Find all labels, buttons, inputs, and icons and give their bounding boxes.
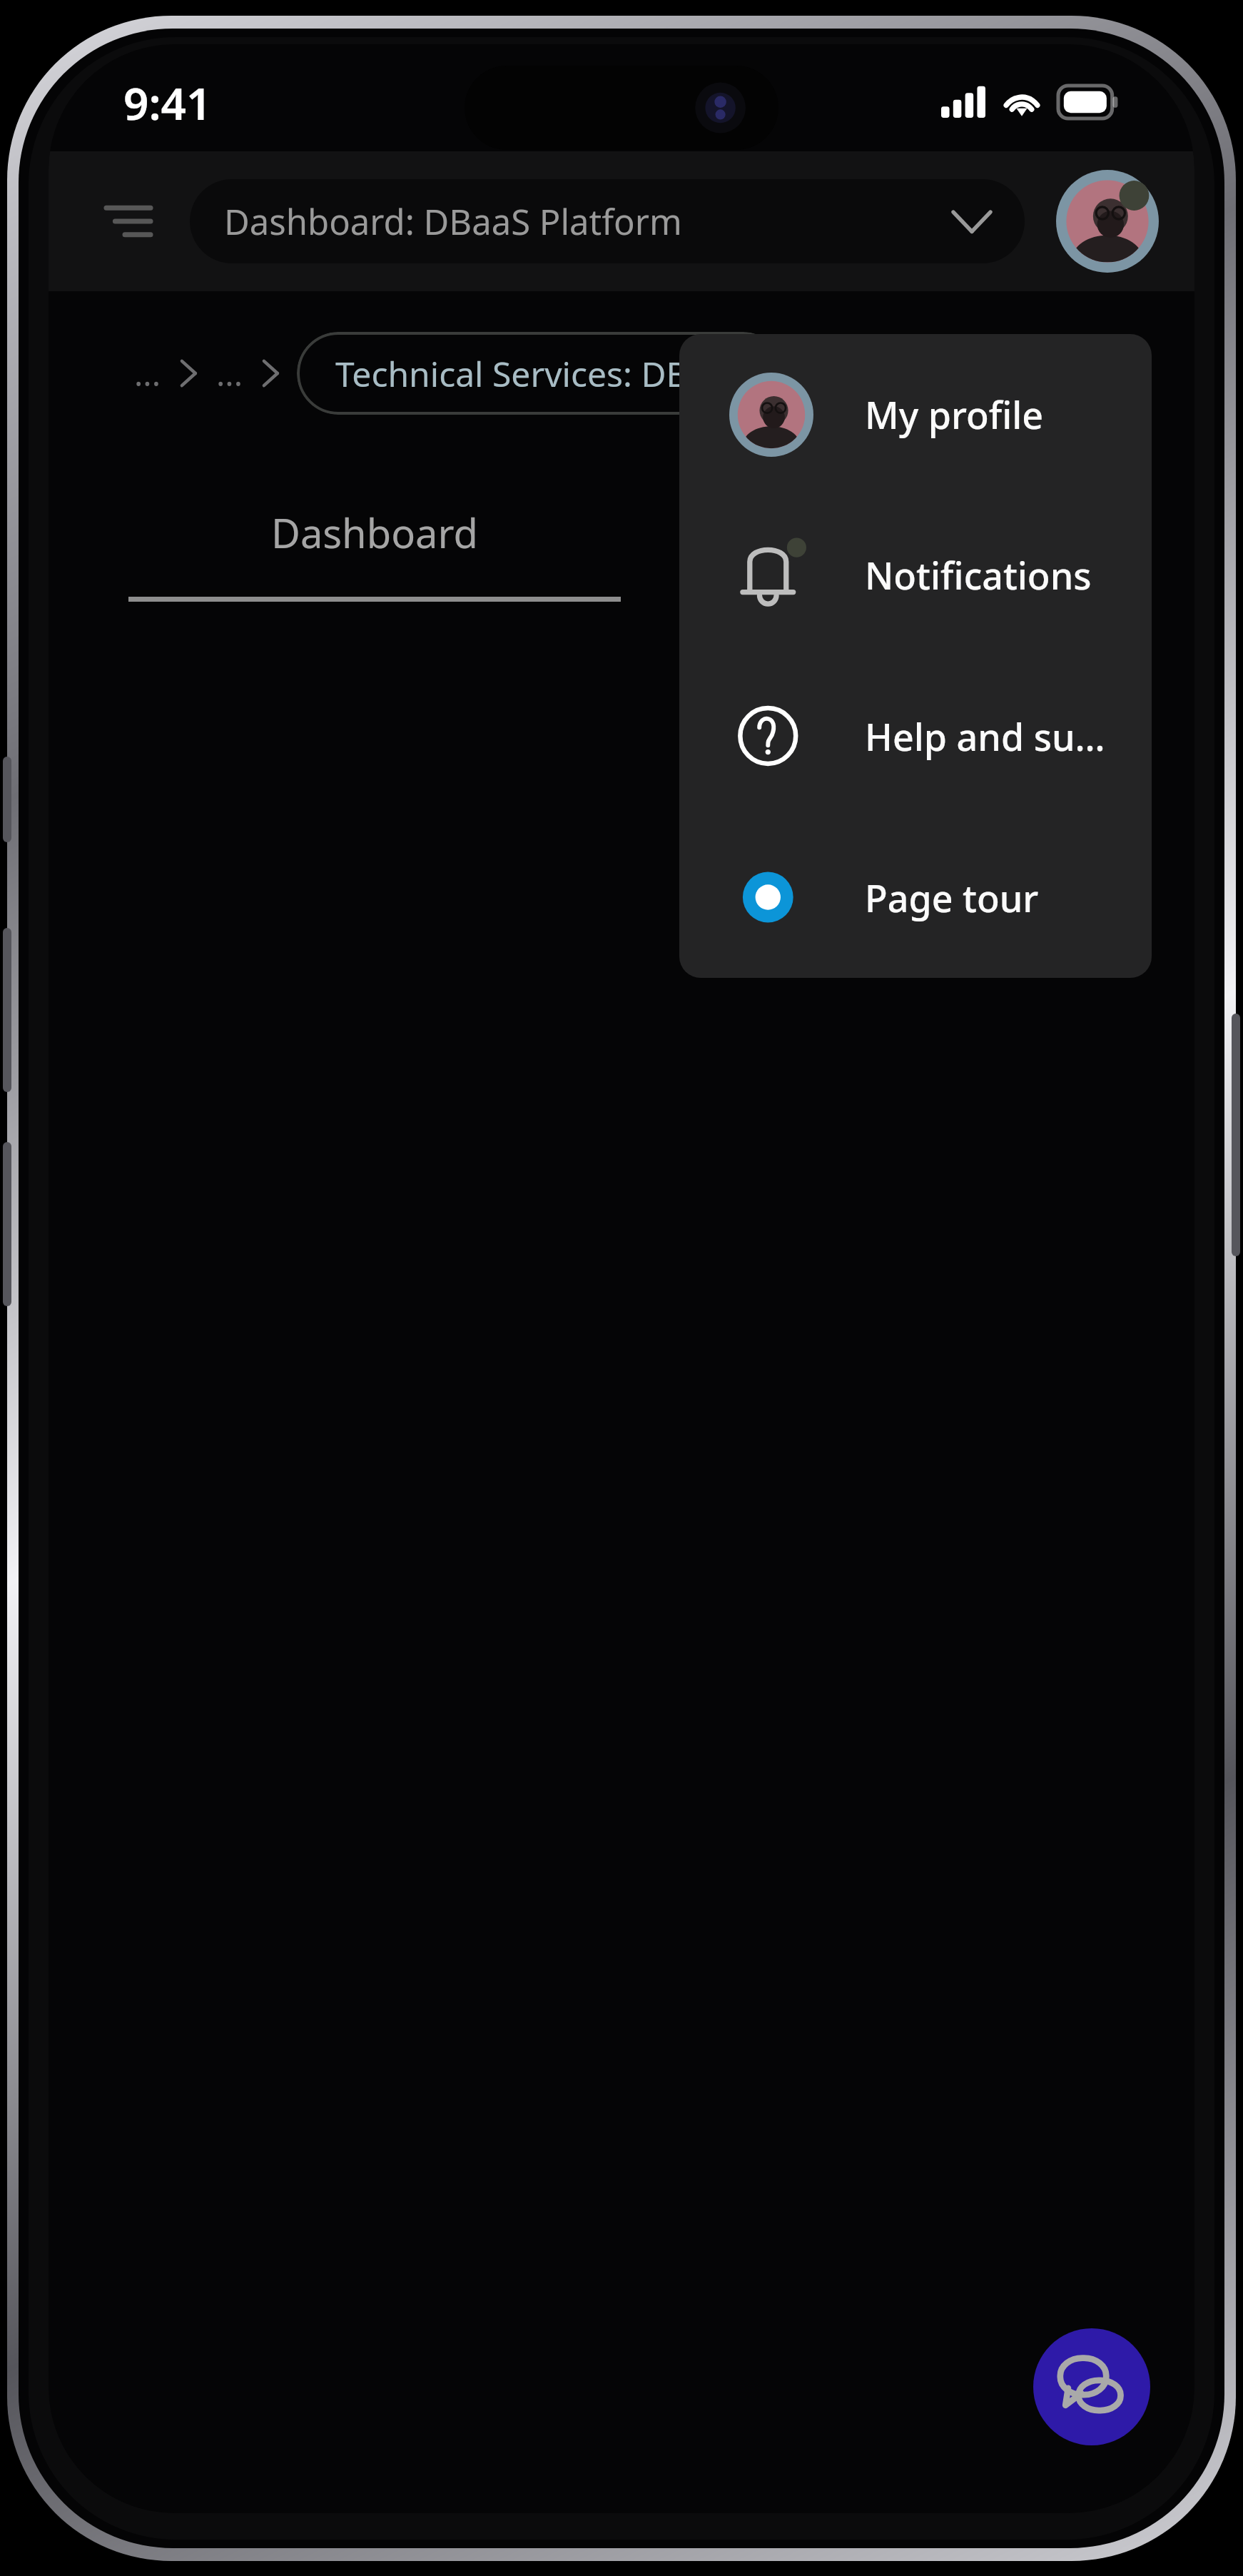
staticText: Help and support: [865, 711, 1123, 762]
button[interactable]: My profile: [679, 334, 1152, 495]
button[interactable]: Menu: [94, 187, 163, 256]
button[interactable]: Notifications: [679, 495, 1152, 655]
staticText: Technical Services: DBaaS: [335, 350, 746, 397]
button[interactable]: Dashboard: DBaaS Platform: [190, 179, 1025, 263]
button[interactable]: Dashboard: [128, 505, 621, 602]
staticText: Page tour: [865, 872, 1039, 923]
staticText: 9:41: [123, 73, 212, 133]
button[interactable]: Technical Services: DBaaS: [297, 332, 784, 415]
button[interactable]: Help and support: [679, 655, 1152, 817]
button[interactable]: Profile: [1056, 170, 1159, 273]
staticText: Dashboard: [271, 505, 478, 560]
staticText: My profile: [865, 389, 1044, 440]
staticText: Notifications: [865, 550, 1092, 600]
button[interactable]: Page tour: [679, 817, 1152, 978]
staticText: Dashboard: DBaaS Platform: [224, 198, 953, 246]
button[interactable]: Open chat: [1033, 2328, 1150, 2445]
button[interactable]: ...: [216, 351, 243, 396]
button[interactable]: ...: [134, 351, 161, 396]
